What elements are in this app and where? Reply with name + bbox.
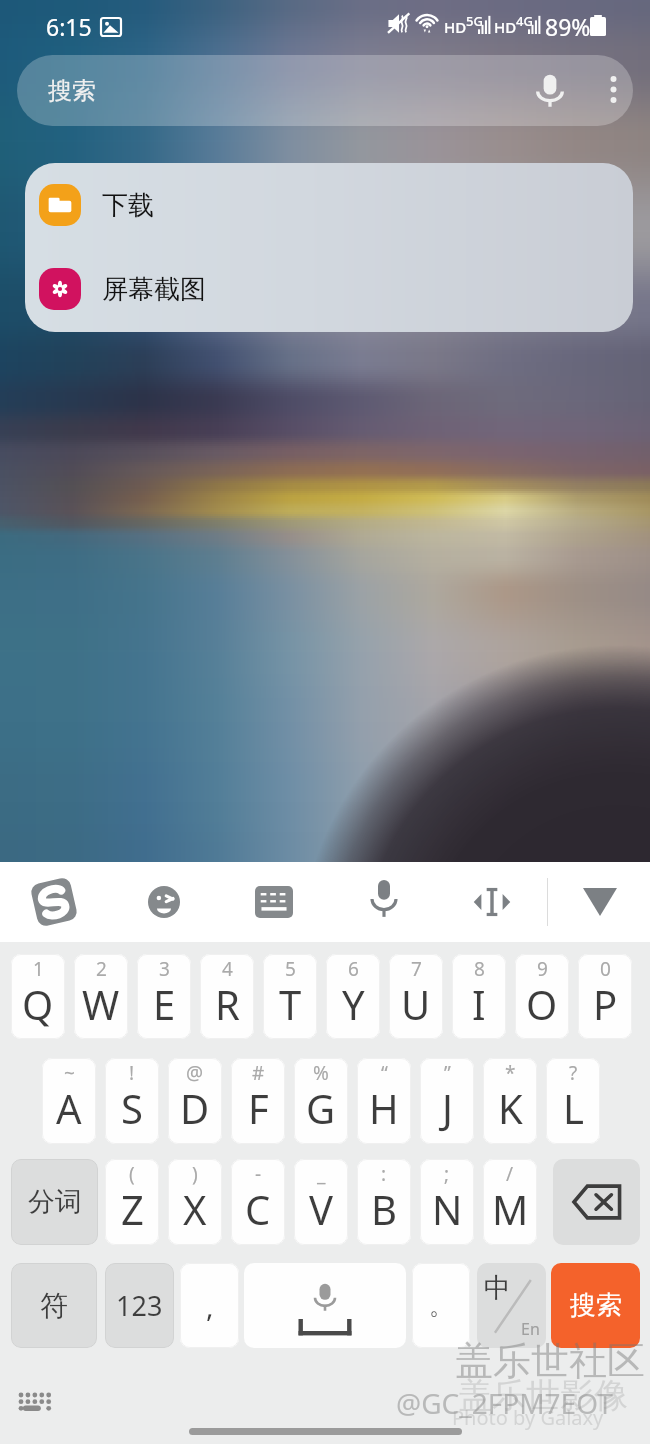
staticText: @ (186, 1060, 204, 1086)
staticText: 1 (33, 956, 44, 982)
staticText: , (206, 1287, 214, 1325)
staticText: 下载 (102, 189, 154, 222)
staticText: 3 (159, 956, 170, 982)
staticText: B (371, 1182, 397, 1236)
staticText: O (526, 977, 558, 1031)
staticText: 2 (96, 956, 107, 982)
button[interactable]: More options (593, 69, 633, 110)
button[interactable]: Keyboard layout (247, 878, 301, 926)
staticText: HD (494, 17, 517, 37)
button[interactable]: 3 (137, 954, 191, 1039)
button[interactable]: 6 (326, 954, 380, 1039)
staticText: 89% (545, 11, 591, 42)
button[interactable]: Switch Chinese English (477, 1263, 546, 1348)
staticText: 123 (116, 1287, 163, 1324)
button[interactable]: Move cursor (465, 878, 519, 926)
staticText: S (121, 1081, 143, 1135)
staticText: 4G (516, 12, 533, 30)
staticText: HD (444, 17, 467, 37)
staticText: D (180, 1081, 210, 1135)
button[interactable]: Space (244, 1263, 406, 1348)
button[interactable]: 分词 (11, 1159, 98, 1245)
button[interactable]: Sogou input (22, 870, 86, 934)
staticText: K (498, 1081, 523, 1135)
button[interactable]: 下载 (25, 163, 633, 247)
staticText: ~ (64, 1060, 75, 1086)
button[interactable]: Hide keyboard (18, 1392, 54, 1412)
button[interactable]: ; (420, 1159, 474, 1245)
staticText: 符 (40, 1288, 68, 1323)
button[interactable]: Hide keyboard (575, 880, 625, 924)
staticText: 分词 (28, 1185, 82, 1219)
button[interactable]: Voice search (528, 69, 572, 113)
button[interactable]: 1 (11, 954, 65, 1039)
button[interactable]: Emoji (137, 878, 191, 926)
button[interactable]: 符 (11, 1263, 97, 1348)
staticText: L (563, 1081, 584, 1135)
button[interactable]: % (294, 1058, 348, 1144)
staticText: ; (444, 1161, 450, 1187)
staticText: 屏幕截图 (102, 273, 206, 306)
staticText: J (442, 1081, 453, 1135)
staticText: Q (22, 977, 54, 1031)
staticText: E (153, 977, 176, 1031)
staticText: 中 (484, 1271, 511, 1305)
staticText: Photo by Galaxy (452, 1404, 604, 1431)
staticText: H (369, 1081, 399, 1135)
staticText: W (82, 977, 120, 1031)
button[interactable]: 搜索 (17, 55, 633, 126)
staticText: A (56, 1081, 82, 1135)
staticText: M (492, 1182, 529, 1236)
button[interactable]: Voice input (361, 872, 407, 926)
button[interactable]: @ (168, 1058, 222, 1144)
staticText: 。 (429, 1291, 453, 1321)
staticText: 0 (600, 956, 611, 982)
button[interactable]: , (180, 1263, 239, 1348)
staticText: En (521, 1318, 540, 1340)
button[interactable]: “ (357, 1058, 411, 1144)
button[interactable]: 8 (452, 954, 506, 1039)
staticText: 搜索 (570, 1289, 622, 1322)
button[interactable]: ( (105, 1159, 159, 1245)
button[interactable]: ” (420, 1058, 474, 1144)
button[interactable]: Backspace (553, 1159, 640, 1245)
button[interactable]: 5 (263, 954, 317, 1039)
staticText: G (306, 1081, 336, 1135)
staticText: U (401, 977, 431, 1031)
button[interactable]: ~ (42, 1058, 96, 1144)
button[interactable]: 2 (74, 954, 128, 1039)
staticText: ( (129, 1161, 135, 1187)
button[interactable]: # (231, 1058, 285, 1144)
button[interactable]: ! (105, 1058, 159, 1144)
staticText: I (472, 977, 486, 1031)
staticText: F (248, 1081, 269, 1135)
button[interactable]: : (357, 1159, 411, 1245)
button[interactable]: 9 (515, 954, 569, 1039)
staticText: 6 (348, 956, 359, 982)
button[interactable]: ) (168, 1159, 222, 1245)
button[interactable]: * (483, 1058, 537, 1144)
button[interactable]: 4 (200, 954, 254, 1039)
staticText: ? (569, 1060, 578, 1086)
staticText: ) (192, 1161, 198, 1187)
button[interactable]: 7 (389, 954, 443, 1039)
button[interactable]: - (231, 1159, 285, 1245)
staticText: 6:15 (46, 11, 92, 42)
staticText: ” (444, 1060, 451, 1086)
button[interactable]: _ (294, 1159, 348, 1245)
button[interactable]: 123 (105, 1263, 174, 1348)
staticText: 5G (466, 12, 483, 30)
staticText: 盖乐世社区 (455, 1337, 645, 1385)
button[interactable]: 搜索 (551, 1263, 640, 1348)
button[interactable]: 。 (412, 1263, 470, 1348)
staticText: - (255, 1161, 262, 1187)
staticText: : (381, 1161, 387, 1187)
staticText: 8 (474, 956, 485, 982)
button[interactable]: 屏幕截图 (25, 247, 633, 331)
staticText: R (215, 977, 240, 1031)
staticText: V (309, 1182, 333, 1236)
button[interactable]: / (483, 1159, 537, 1245)
staticText: @GC_2FPM7EOT (396, 1384, 613, 1422)
button[interactable]: 0 (578, 954, 632, 1039)
button[interactable]: ? (546, 1058, 600, 1144)
